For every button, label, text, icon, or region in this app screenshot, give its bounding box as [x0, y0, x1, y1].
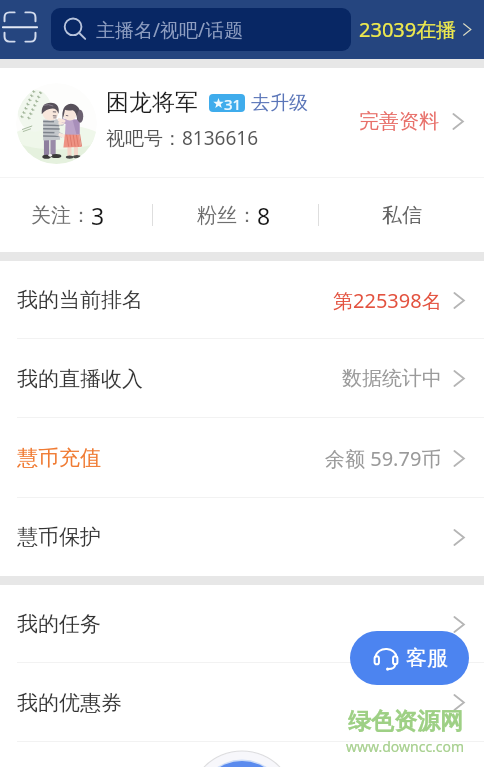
- staticText: 客服: [406, 645, 448, 671]
- staticText: 我的当前排名: [17, 287, 143, 313]
- staticText: 慧币保护: [17, 524, 101, 550]
- button[interactable]: [16, 83, 97, 164]
- staticText: 粉丝：: [197, 203, 257, 228]
- staticText: 完善资料: [359, 109, 439, 134]
- staticText: www.downcc.com: [346, 737, 465, 756]
- button[interactable]: 粉丝：: [153, 178, 318, 252]
- staticText: 31: [224, 94, 242, 112]
- staticText: 视吧号：8136616: [106, 125, 259, 151]
- button[interactable]: 23039在播: [359, 16, 474, 43]
- staticText: 困龙将军: [106, 88, 198, 117]
- staticText: 关注：: [31, 203, 91, 228]
- staticText: 8: [257, 200, 271, 231]
- button[interactable]: 我的直播收入: [0, 339, 484, 418]
- button[interactable]: 关注：: [0, 178, 152, 252]
- button[interactable]: 去升级: [251, 91, 308, 115]
- staticText: 绿色资源网: [348, 707, 463, 736]
- button[interactable]: 我的当前排名: [0, 261, 484, 339]
- staticText: 数据统计中: [342, 366, 442, 391]
- staticText: 私信: [382, 203, 422, 228]
- staticText: 主播名/视吧/话题: [96, 17, 244, 43]
- button[interactable]: 我的任务: [0, 585, 484, 663]
- button[interactable]: 主播名/视吧/话题: [51, 8, 351, 51]
- staticText: 我的任务: [17, 611, 101, 637]
- staticText: 我的优惠券: [17, 690, 122, 716]
- staticText: 第225398名: [333, 287, 442, 314]
- button[interactable]: 私信: [319, 178, 484, 252]
- button[interactable]: Go live: [188, 745, 296, 767]
- staticText: 我的直播收入: [17, 366, 143, 392]
- staticText: 慧币充值: [17, 445, 101, 471]
- button[interactable]: 完善资料: [359, 109, 467, 134]
- button[interactable]: 客服: [350, 631, 469, 685]
- button[interactable]: 我的优惠券: [0, 663, 484, 742]
- button[interactable]: 慧币保护: [0, 498, 484, 576]
- staticText: 23039在播: [359, 16, 457, 43]
- staticText: 余额 59.79币: [325, 445, 442, 472]
- button[interactable]: 慧币充值: [0, 418, 484, 498]
- staticText: 3: [91, 200, 105, 231]
- button[interactable]: Scan QR code: [0, 6, 40, 48]
